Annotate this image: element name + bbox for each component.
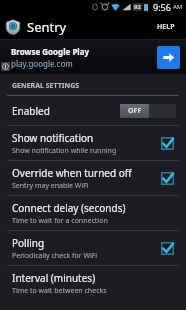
staticText: 92 <box>134 3 141 11</box>
staticText: GENERAL SETTINGS <box>12 81 80 91</box>
staticText: 9:56 <box>153 1 171 13</box>
button[interactable]: Interval (minutes) <box>0 266 186 300</box>
staticText: AM <box>173 3 183 11</box>
button[interactable]: HELP <box>145 14 186 40</box>
other: Ad information <box>1 62 10 71</box>
button[interactable]: Override when turned off <box>0 161 186 195</box>
staticText: play.google.com <box>11 58 73 69</box>
button[interactable]: Checkbox <box>159 170 175 186</box>
staticText: OFF <box>128 106 142 116</box>
button[interactable]: Polling <box>0 231 186 265</box>
button[interactable]: Show notification <box>0 126 186 160</box>
staticText: Periodically check for WiFi <box>12 251 98 261</box>
staticText: HELP <box>157 22 175 32</box>
staticText: Sentry <box>27 18 67 36</box>
button[interactable]: Browse Google Play <box>0 40 186 74</box>
staticText: Time to wait between checks <box>12 286 107 296</box>
button[interactable]: Open Google Play <box>157 46 180 69</box>
button[interactable]: Checkbox <box>159 240 175 256</box>
staticText: Show notification while running <box>12 146 117 156</box>
button[interactable]: Checkbox <box>159 135 175 151</box>
button[interactable]: Connect delay (seconds) <box>0 196 186 230</box>
button[interactable]: Enabled toggle, off <box>120 104 176 118</box>
staticText: Time to wait for a connection <box>12 216 108 226</box>
staticText: Enabled <box>12 104 120 118</box>
staticText: Sentry may enable WiFi <box>12 181 89 191</box>
staticText: Connect delay (seconds) <box>12 201 126 215</box>
staticText: Interval (minutes) <box>12 271 96 285</box>
staticText: Show notification <box>12 131 94 145</box>
staticText: Override when turned off <box>12 166 132 180</box>
staticText: Browse Google Play <box>11 46 90 57</box>
button[interactable]: Enabled <box>0 96 186 125</box>
staticText: Polling <box>12 236 45 250</box>
